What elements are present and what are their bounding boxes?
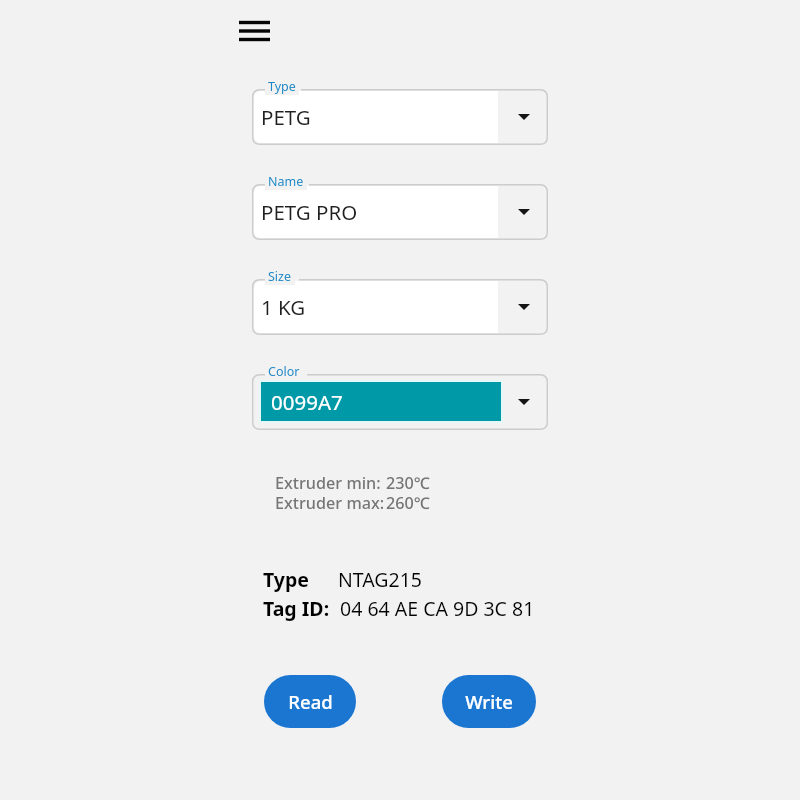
staticText: Color [268, 363, 300, 380]
staticText: Tag ID: [263, 595, 330, 622]
button[interactable]: Read [264, 675, 356, 728]
staticText: Read [288, 689, 333, 714]
button[interactable]: PETG [252, 77, 548, 145]
staticText: Extruder max: [275, 492, 385, 514]
button[interactable]: 1 KG [252, 267, 548, 335]
staticText: 04 64 AE CA 9D 3C 81 [340, 595, 535, 622]
staticText: Type [263, 566, 309, 593]
button[interactable]: PETG PRO [252, 172, 548, 240]
staticText: PETG PRO [261, 198, 358, 226]
staticText: Extruder min: [275, 472, 381, 494]
staticText: Size [268, 268, 292, 285]
staticText: 1 KG [261, 293, 306, 321]
staticText: 0099A7 [271, 388, 343, 416]
staticText: Write [465, 689, 513, 714]
button[interactable]: Menu [232, 9, 276, 53]
staticText: Name [268, 173, 304, 190]
staticText: NTAG215 [338, 566, 423, 593]
button[interactable]: Write [442, 675, 536, 728]
staticText: 260℃ [386, 492, 430, 514]
button[interactable]: 0099A7 [252, 362, 548, 430]
staticText: 230℃ [386, 472, 430, 494]
staticText: PETG [261, 103, 311, 131]
staticText: Type [268, 78, 296, 95]
